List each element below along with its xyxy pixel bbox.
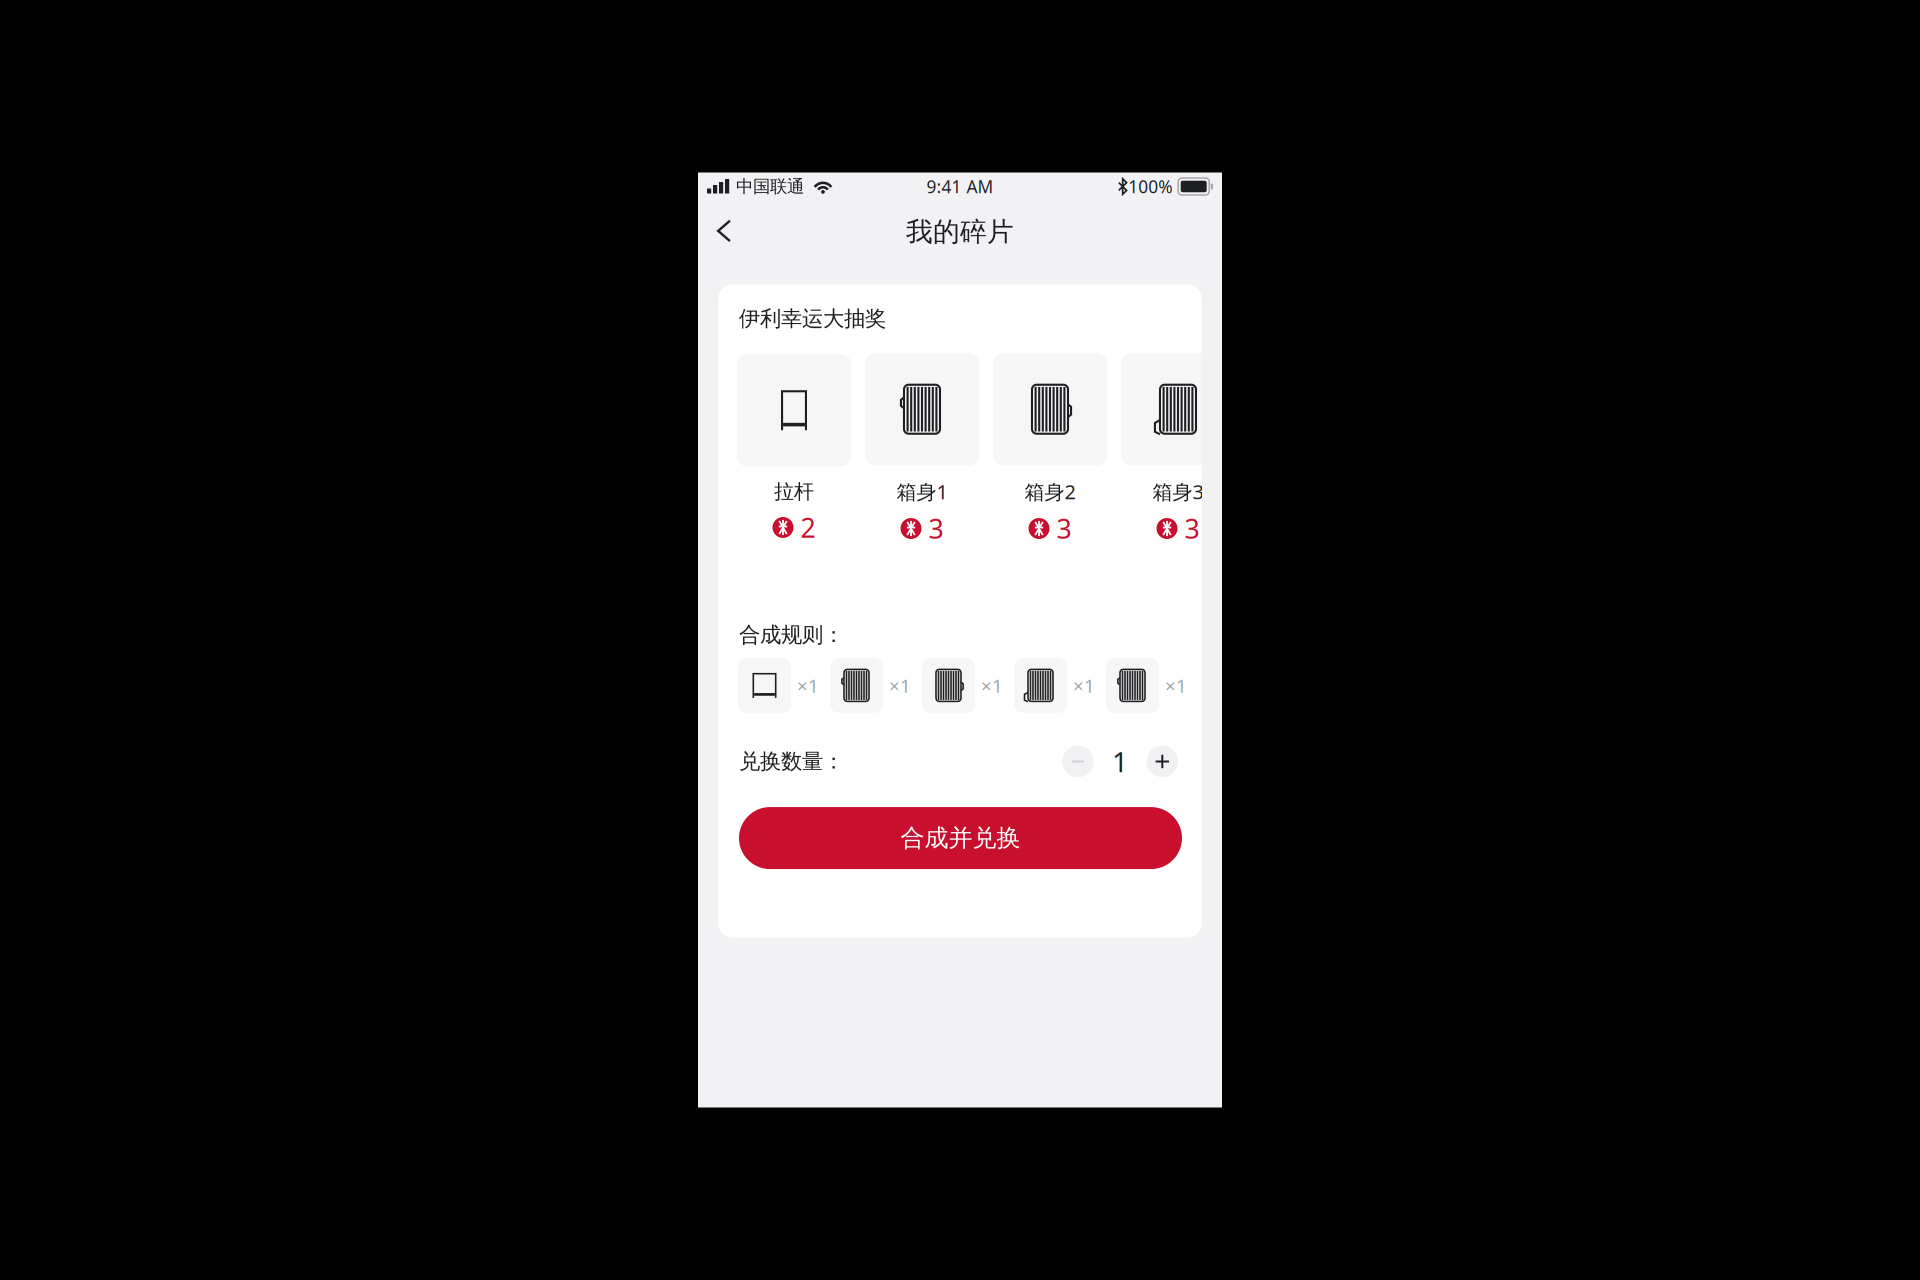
staticText: 箱身3 [1152, 478, 1203, 505]
staticText: ×1 [889, 673, 911, 698]
staticText: ×1 [1073, 673, 1095, 698]
button[interactable]: 箱身1 [865, 353, 979, 546]
staticText: 合成并兑换 [900, 823, 1020, 853]
staticText: 3 [928, 511, 943, 546]
button[interactable]: 拉杆 [737, 354, 851, 545]
staticText: 拉杆 [774, 479, 814, 504]
button[interactable]: 箱身3 [1121, 353, 1235, 546]
button[interactable]: 合成并兑换 [739, 807, 1182, 869]
button[interactable]: Back [698, 200, 748, 265]
staticText: 2 [800, 510, 815, 545]
staticText: 兑换数量： [739, 748, 844, 775]
staticText: 箱身2 [1024, 478, 1075, 505]
staticText: 9:41 AM [926, 175, 993, 198]
staticText: 中国联通 [736, 176, 804, 197]
button[interactable]: Increase quantity [1147, 746, 1178, 777]
staticText: ×1 [1165, 673, 1187, 698]
staticText: 3 [1056, 511, 1071, 546]
staticText: 1 [1112, 743, 1128, 780]
staticText: 箱身1 [896, 478, 947, 505]
staticText: 3 [1184, 511, 1199, 546]
button[interactable]: Decrease quantity [1062, 746, 1094, 777]
staticText: 合成规则： [739, 622, 844, 648]
staticText: ×1 [797, 673, 819, 698]
button[interactable]: 箱身2 [993, 353, 1107, 546]
staticText: 伊利幸运大抽奖 [739, 305, 886, 332]
staticText: 100% [1128, 175, 1172, 198]
staticText: 我的碎片 [906, 215, 1014, 248]
staticText: ×1 [981, 673, 1003, 698]
